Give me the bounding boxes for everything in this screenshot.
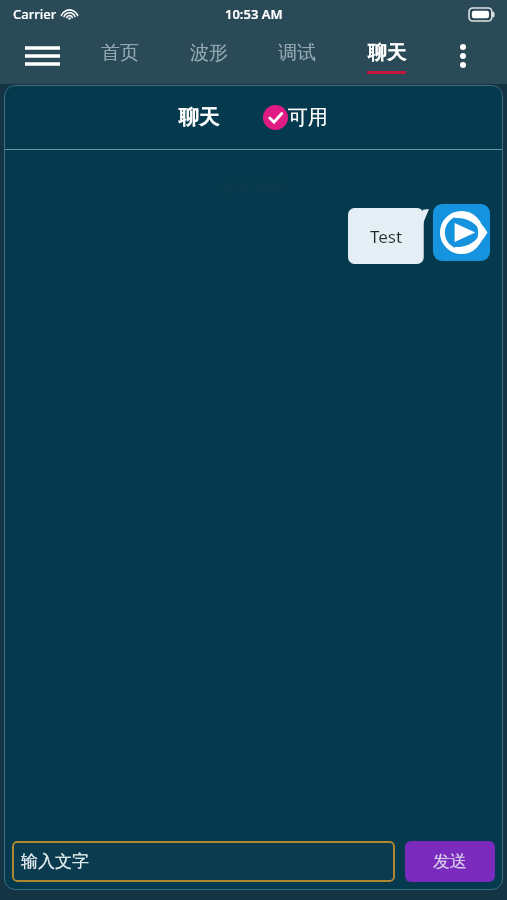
staticText: 10:53 AM bbox=[225, 5, 283, 23]
staticText: 聊天 bbox=[179, 105, 219, 130]
staticText: 今天 bbox=[222, 178, 248, 194]
button[interactable]: 发送 bbox=[405, 841, 495, 882]
staticText: Test bbox=[370, 225, 403, 248]
button[interactable]: Menu bbox=[20, 34, 64, 78]
staticText: 可用 bbox=[288, 105, 328, 130]
button[interactable]: 首页 bbox=[84, 28, 156, 84]
staticText: Carrier bbox=[13, 5, 57, 23]
staticText: 波形 bbox=[190, 41, 228, 65]
button[interactable]: Test bbox=[348, 208, 429, 264]
staticText: 首页 bbox=[101, 41, 139, 65]
button[interactable]: Contact avatar bbox=[433, 204, 490, 261]
button[interactable]: 波形 bbox=[173, 28, 245, 84]
button[interactable]: More options bbox=[440, 33, 486, 79]
staticText: 调试 bbox=[278, 41, 316, 65]
button[interactable]: 调试 bbox=[261, 28, 333, 84]
staticText: 发送 bbox=[433, 851, 467, 872]
staticText: 10:53 bbox=[252, 177, 286, 195]
button[interactable]: 聊天 bbox=[350, 28, 422, 84]
button[interactable]: 输入文字 bbox=[12, 841, 395, 882]
staticText: 聊天 bbox=[368, 41, 406, 65]
button[interactable]: 可用 bbox=[263, 105, 328, 130]
staticText: 输入文字 bbox=[21, 851, 89, 872]
